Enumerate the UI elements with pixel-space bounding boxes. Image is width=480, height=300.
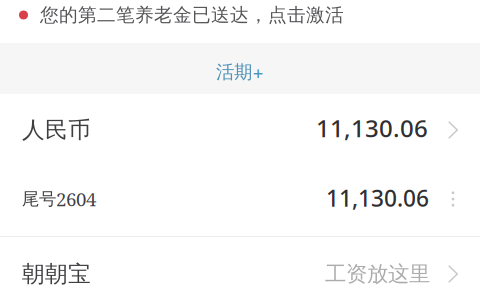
button[interactable]: 人民币 — [0, 95, 480, 165]
button[interactable]: 朝朝宝 — [0, 243, 480, 300]
staticText: 11,130.06 — [316, 112, 428, 144]
staticText: 活期+ — [216, 60, 264, 84]
staticText: 人民币 — [22, 116, 91, 144]
button[interactable]: 活期+ — [0, 60, 480, 84]
staticText: 尾号 — [22, 188, 56, 210]
staticText: 工资放这里 — [325, 261, 430, 287]
staticText: 您的第二笔养老金已送达，点击激活 — [40, 3, 344, 26]
staticText: 朝朝宝 — [22, 260, 91, 288]
staticText: 11,130.06 — [326, 183, 429, 213]
button[interactable]: 您的第二笔养老金已送达，点击激活 — [0, 0, 480, 30]
staticText: 2604 — [56, 186, 96, 212]
button[interactable]: 尾号 — [0, 168, 480, 230]
button[interactable]: 更多 — [436, 177, 470, 221]
